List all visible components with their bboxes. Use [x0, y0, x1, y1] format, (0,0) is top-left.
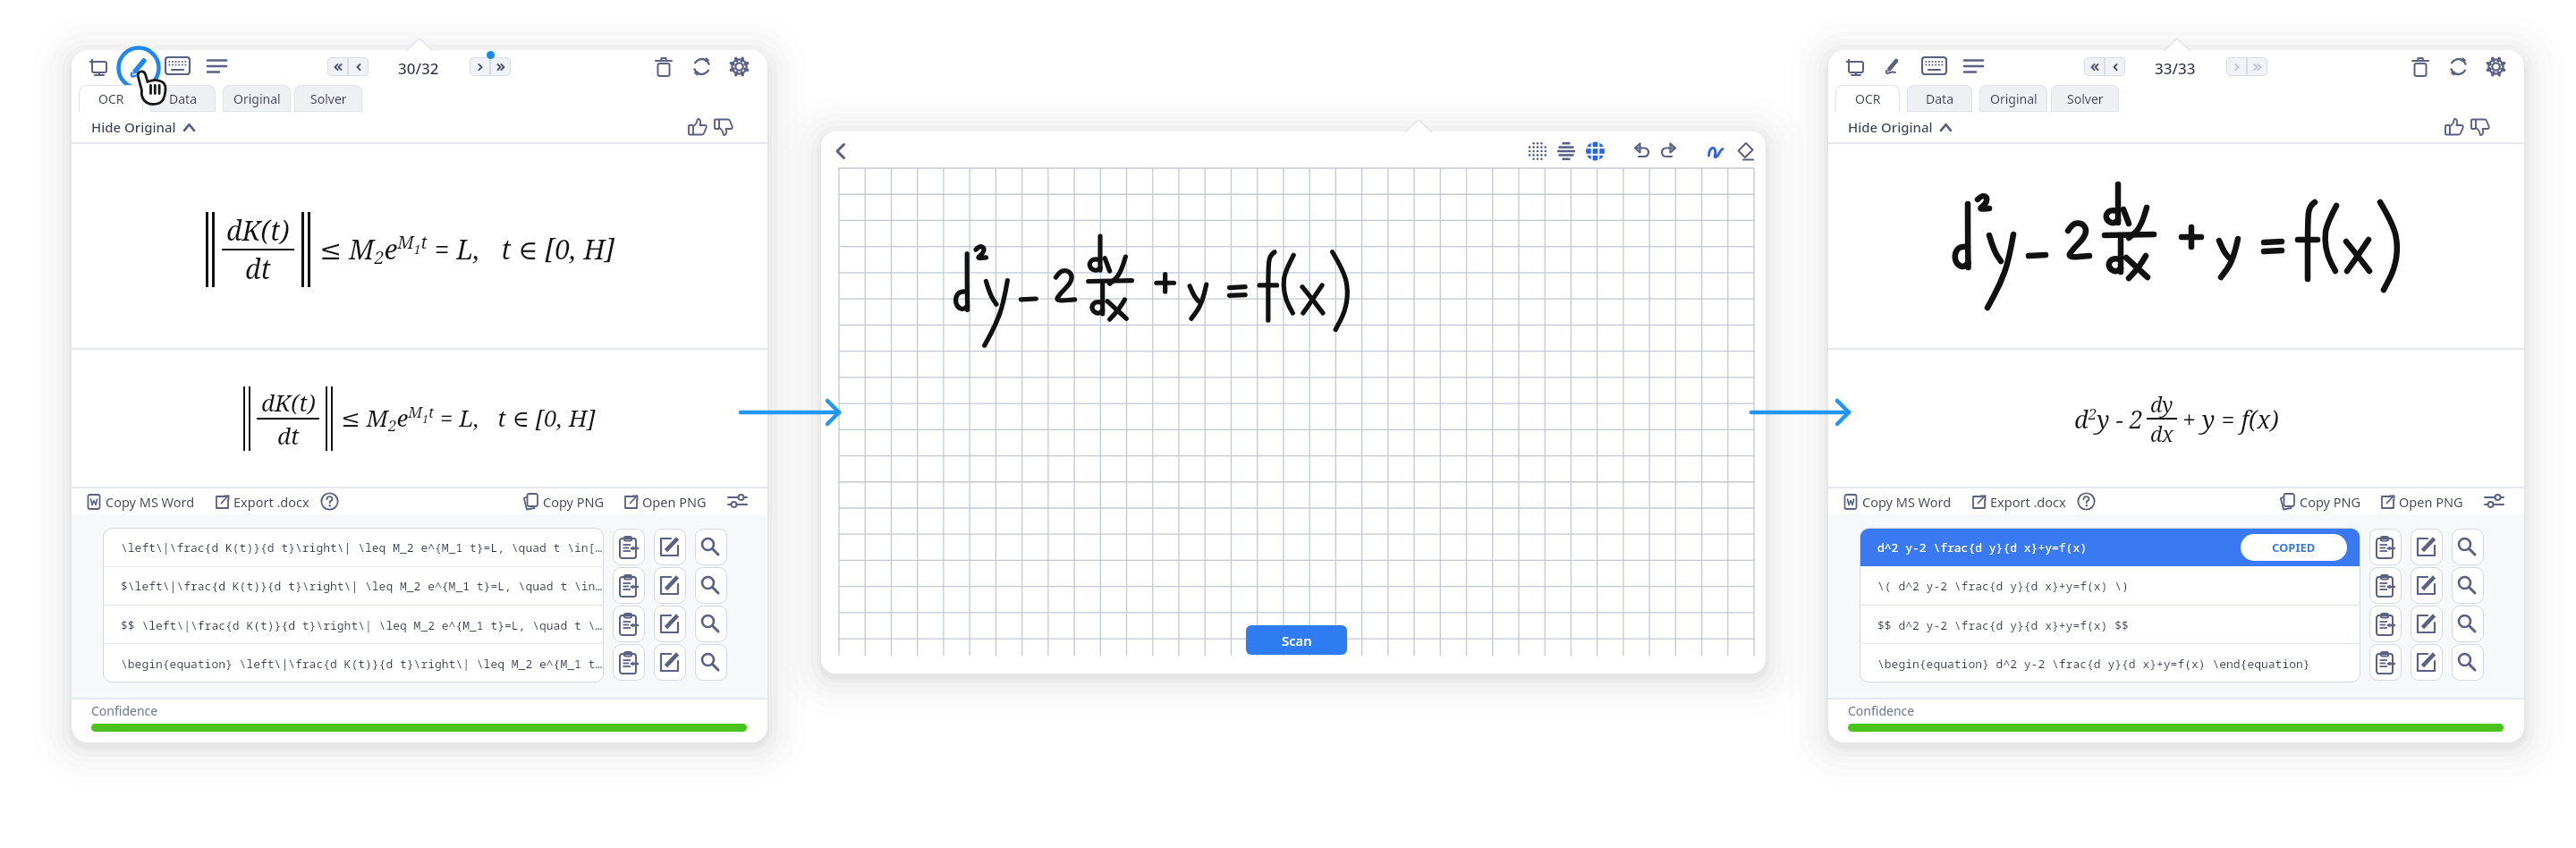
button[interactable] [695, 644, 727, 681]
button[interactable] [695, 606, 727, 642]
button[interactable] [730, 57, 749, 76]
staticText: OCR [98, 90, 124, 107]
button[interactable] [695, 567, 727, 604]
button[interactable] [89, 58, 109, 76]
button[interactable]: $$ d^2 y-2 \frac{d y}{d x}+y=f(x) $$ [1860, 606, 2360, 644]
button[interactable]: OCR [1835, 85, 1900, 112]
button[interactable] [1922, 57, 1946, 75]
button[interactable] [2226, 57, 2247, 76]
button[interactable]: Data [150, 85, 216, 112]
button[interactable] [1964, 59, 1983, 73]
button[interactable] [2369, 644, 2402, 681]
button[interactable] [127, 56, 149, 79]
button[interactable]: Hide Original [1848, 112, 1953, 142]
button[interactable] [2084, 57, 2105, 76]
button[interactable] [1661, 142, 1678, 158]
button[interactable] [1707, 142, 1724, 158]
button[interactable] [728, 494, 747, 509]
button[interactable] [613, 529, 645, 565]
button[interactable] [2452, 606, 2484, 642]
button[interactable] [470, 57, 490, 76]
button[interactable]: $$ \left\|\frac{d K(t)}{d t}\right\| \le… [104, 606, 603, 644]
button[interactable]: Copy MS Word [1843, 493, 1952, 511]
button[interactable]: \( d^2 y-2 \frac{d y}{d x}+y=f(x) \) [1860, 567, 2360, 605]
button[interactable] [1529, 141, 1546, 161]
button[interactable] [2487, 57, 2505, 76]
button[interactable] [348, 57, 369, 76]
button[interactable] [1557, 141, 1575, 161]
button[interactable] [2412, 57, 2428, 77]
button[interactable] [613, 567, 645, 604]
button[interactable] [689, 118, 708, 136]
staticText: Original [233, 90, 281, 107]
button[interactable] [1883, 57, 1901, 75]
button[interactable] [833, 141, 849, 161]
button[interactable]: Copy MS Word [87, 493, 195, 511]
button[interactable] [2445, 118, 2465, 136]
button[interactable] [2411, 529, 2443, 565]
button[interactable]: $\left\|\frac{d K(t)}{d t}\right\| \leq … [104, 567, 603, 605]
button[interactable] [327, 57, 348, 76]
button[interactable] [165, 57, 190, 75]
button[interactable] [2369, 567, 2402, 604]
button[interactable] [2077, 492, 2096, 511]
button[interactable] [320, 492, 339, 511]
button[interactable]: Copy PNG [2280, 493, 2361, 511]
button[interactable] [613, 644, 645, 681]
button[interactable] [1634, 142, 1651, 158]
button[interactable] [2452, 529, 2484, 565]
button[interactable] [1736, 142, 1754, 161]
button[interactable] [2411, 567, 2443, 604]
button[interactable] [2452, 644, 2484, 681]
button[interactable] [654, 529, 686, 565]
button[interactable]: d^2 y-2 \frac{d y}{d x}+y=f(x) [1860, 529, 2360, 566]
button[interactable]: Original [1979, 85, 2047, 112]
staticText: COPIED [2272, 539, 2316, 555]
button[interactable]: Data [1907, 85, 1972, 112]
staticText: OCR [1855, 90, 1881, 107]
staticText: dy [2150, 390, 2173, 418]
button[interactable] [2247, 57, 2267, 76]
button[interactable] [656, 57, 672, 77]
button[interactable]: Solver [2051, 85, 2119, 112]
button[interactable] [208, 59, 226, 73]
button[interactable] [693, 57, 710, 77]
staticText: $$ \left\|\frac{d K(t)}{d t}\right\| \le… [121, 617, 603, 633]
staticText: Solver [2067, 90, 2104, 107]
button[interactable] [1846, 58, 1866, 76]
button[interactable] [2369, 529, 2402, 565]
button[interactable]: Original [223, 85, 291, 112]
staticText: dx [2150, 420, 2173, 447]
button[interactable] [654, 644, 686, 681]
button[interactable] [1586, 141, 1605, 161]
button[interactable]: Solver [294, 85, 362, 112]
button[interactable] [613, 606, 645, 642]
button[interactable]: Open PNG [2380, 493, 2463, 511]
button[interactable]: \begin{equation} d^2 y-2 \frac{d y}{d x}… [1860, 645, 2360, 683]
staticText: Data [1926, 90, 1953, 107]
button[interactable] [654, 567, 686, 604]
button[interactable]: Copy PNG [523, 493, 605, 511]
button[interactable]: Export .docx [1971, 493, 2066, 511]
button[interactable] [2369, 606, 2402, 642]
button[interactable] [2411, 606, 2443, 642]
button[interactable] [2471, 119, 2491, 137]
button[interactable]: \begin{equation} \left\|\frac{d K(t)}{d … [104, 645, 603, 683]
button[interactable]: OCR [79, 85, 143, 112]
button[interactable] [2411, 644, 2443, 681]
button[interactable] [654, 606, 686, 642]
button[interactable]: Open PNG [623, 493, 707, 511]
button[interactable] [695, 529, 727, 565]
button[interactable]: Scan [1246, 625, 1347, 655]
button[interactable] [715, 119, 734, 137]
button[interactable] [2450, 57, 2467, 77]
button[interactable] [490, 57, 511, 76]
button[interactable]: \left\|\frac{d K(t)}{d t}\right\| \leq M… [104, 529, 603, 566]
staticText: Export .docx [1990, 493, 2066, 511]
button[interactable] [839, 168, 1754, 656]
button[interactable] [2105, 57, 2125, 76]
button[interactable]: Hide Original [91, 112, 196, 142]
button[interactable] [2485, 494, 2504, 509]
button[interactable] [2452, 567, 2484, 604]
button[interactable]: Export .docx [215, 493, 309, 511]
